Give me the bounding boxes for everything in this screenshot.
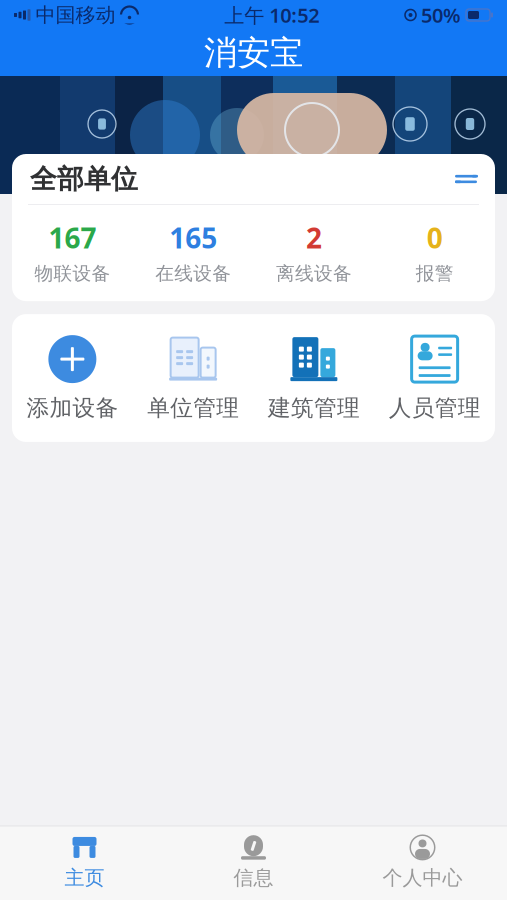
staticText: 主页 xyxy=(64,865,104,890)
button[interactable]: 单位管理 xyxy=(133,334,254,422)
staticText: 信息 xyxy=(233,865,273,890)
button[interactable]: 个人中心 xyxy=(338,833,507,890)
button[interactable]: 全部单位 xyxy=(12,154,495,204)
staticText: 50% xyxy=(421,2,461,28)
button[interactable]: 人员管理 xyxy=(374,334,495,422)
staticText: 离线设备 xyxy=(276,262,352,285)
staticText: 165 xyxy=(169,219,217,256)
staticText: 2 xyxy=(306,219,322,256)
staticText: 中国移动 xyxy=(35,3,115,27)
staticText: 上午 10:52 xyxy=(224,2,319,28)
staticText: 0 xyxy=(427,219,443,256)
staticText: 报警 xyxy=(416,262,454,285)
staticText: 全部单位 xyxy=(30,163,138,195)
button[interactable]: 信息 xyxy=(169,833,338,890)
button[interactable]: 建筑管理 xyxy=(253,334,374,422)
staticText: 单位管理 xyxy=(147,394,239,422)
staticText: 物联设备 xyxy=(34,262,110,285)
staticText: 建筑管理 xyxy=(268,394,360,422)
staticText: 消安宝 xyxy=(204,32,303,73)
staticText: 个人中心 xyxy=(382,865,462,890)
button[interactable]: 主页 xyxy=(0,833,169,890)
staticText: 167 xyxy=(48,219,96,256)
staticText: 在线设备 xyxy=(155,262,231,285)
button[interactable]: 添加设备 xyxy=(12,334,133,422)
staticText: 添加设备 xyxy=(26,394,118,422)
staticText: 人员管理 xyxy=(389,394,481,422)
